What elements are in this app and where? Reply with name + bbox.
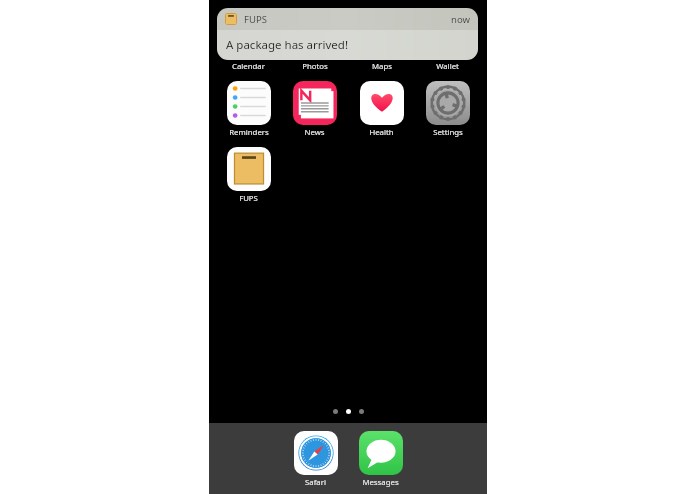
button[interactable]: FUPS <box>217 8 478 60</box>
button[interactable]: Messages <box>348 431 413 488</box>
staticText: now <box>451 13 470 26</box>
staticText: Reminders <box>229 127 269 138</box>
staticText: A package has arrived! <box>226 37 348 53</box>
staticText: FUPS <box>244 13 267 26</box>
staticText: Safari <box>305 477 326 488</box>
staticText: Settings <box>433 127 463 138</box>
button[interactable]: Maps <box>349 15 414 72</box>
button[interactable]: Calendar <box>216 15 281 72</box>
staticText: Photos <box>302 61 328 72</box>
staticText: Messages <box>362 477 399 488</box>
staticText: Calendar <box>232 61 265 72</box>
button[interactable]: FUPS <box>216 147 281 204</box>
staticText: Health <box>369 127 394 138</box>
button[interactable]: Settings <box>415 81 480 138</box>
button[interactable]: Safari <box>283 431 348 488</box>
button[interactable]: News <box>282 81 347 138</box>
button[interactable]: Health <box>349 81 414 138</box>
staticText: FUPS <box>239 193 258 204</box>
staticText: Wallet <box>436 61 459 72</box>
staticText: Maps <box>372 61 392 72</box>
staticText: News <box>304 127 325 138</box>
button[interactable]: Photos <box>282 15 347 72</box>
button[interactable]: Reminders <box>216 81 281 138</box>
button[interactable]: Wallet <box>415 15 480 72</box>
